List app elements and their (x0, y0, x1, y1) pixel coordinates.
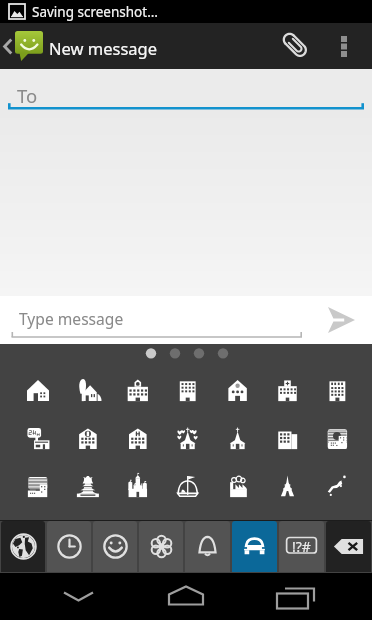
button[interactable]: Send (310, 296, 372, 344)
button[interactable]: Attach (274, 23, 318, 69)
button[interactable]: Home (124, 573, 248, 620)
button[interactable]: Hide keyboard (0, 573, 124, 620)
button[interactable]: More options (318, 23, 369, 69)
staticText: Type message (19, 308, 124, 329)
button[interactable]: Nature (139, 521, 183, 572)
button[interactable]: Places (232, 521, 277, 572)
staticText: New message (49, 37, 158, 59)
button[interactable]: Language (1, 521, 45, 572)
button[interactable]: Emoticons (93, 521, 137, 572)
button[interactable]: Symbols (279, 521, 324, 572)
staticText: Saving screenshot… (32, 3, 158, 21)
button[interactable]: Objects (185, 521, 230, 572)
button[interactable]: Navigate up (0, 31, 43, 61)
button[interactable]: Delete (326, 521, 371, 572)
staticText: To (17, 83, 38, 108)
staticText: !?# (292, 537, 311, 556)
button[interactable]: Recent (47, 521, 91, 572)
button[interactable]: To (0, 69, 372, 110)
button[interactable]: Recent apps (248, 573, 372, 620)
